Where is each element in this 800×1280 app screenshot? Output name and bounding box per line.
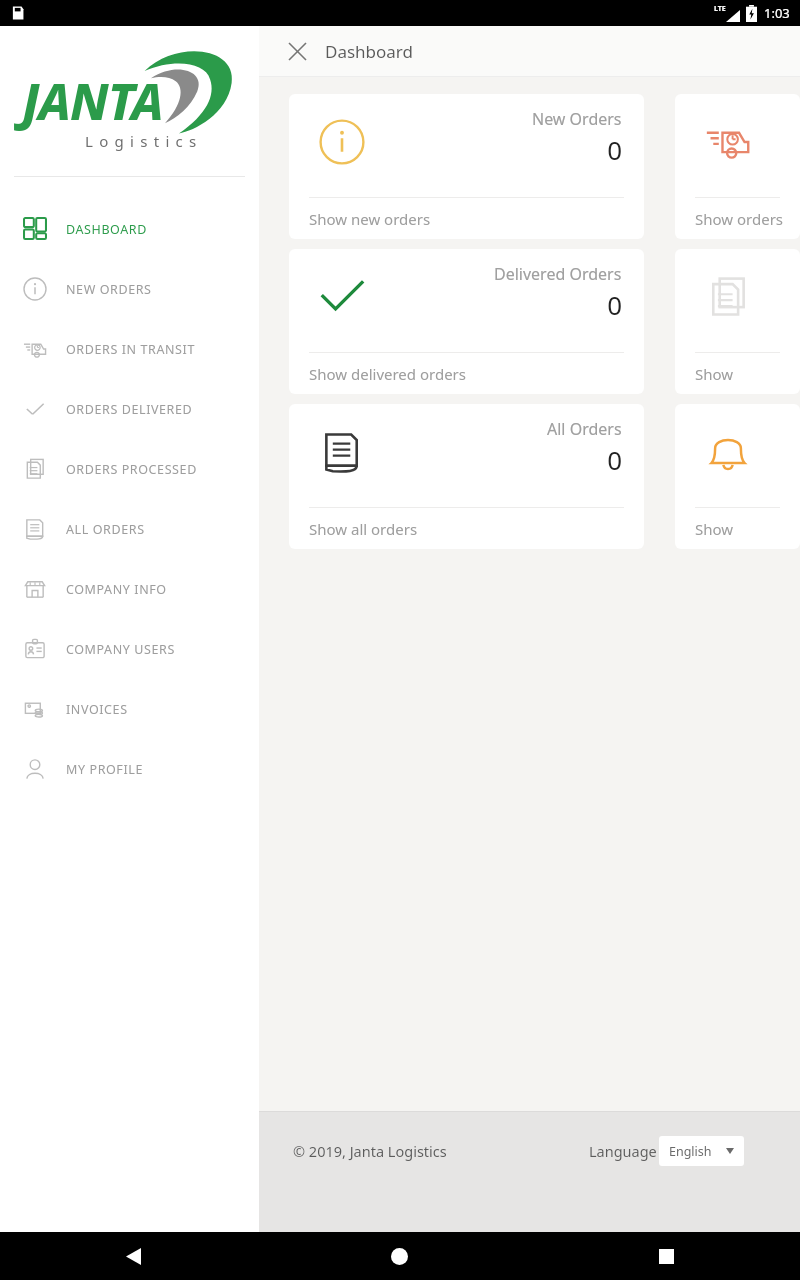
- button[interactable]: English: [659, 1136, 744, 1166]
- staticText: COMPANY INFO: [66, 581, 167, 598]
- button[interactable]: Close: [279, 33, 315, 69]
- button[interactable]: Recents: [533, 1232, 800, 1280]
- staticText: NEW ORDERS: [66, 281, 152, 298]
- button[interactable]: Show processed orders: [675, 249, 800, 394]
- button[interactable]: INVOICES: [0, 679, 259, 739]
- button[interactable]: ORDERS DELIVERED: [0, 379, 259, 439]
- staticText: 0: [607, 132, 622, 167]
- button[interactable]: ORDERS IN TRANSIT: [0, 319, 259, 379]
- button[interactable]: Delivered Orders: [289, 249, 644, 394]
- staticText: 0: [607, 287, 622, 322]
- staticText: COMPANY USERS: [66, 641, 175, 658]
- staticText: ORDERS DELIVERED: [66, 401, 193, 418]
- staticText: All Orders: [547, 418, 622, 440]
- staticText: © 2019, Janta Logistics: [293, 1141, 447, 1161]
- button[interactable]: Show orders in transit: [675, 94, 800, 239]
- button[interactable]: ORDERS PROCESSED: [0, 439, 259, 499]
- staticText: ALL ORDERS: [66, 521, 145, 538]
- staticText: Show processed orders: [695, 364, 800, 384]
- staticText: ORDERS PROCESSED: [66, 461, 197, 478]
- button[interactable]: All Orders: [289, 404, 644, 549]
- button[interactable]: DASHBOARD: [0, 199, 259, 259]
- button[interactable]: COMPANY INFO: [0, 559, 259, 619]
- button[interactable]: Back: [0, 1232, 266, 1280]
- staticText: Dashboard: [325, 40, 414, 63]
- button[interactable]: NEW ORDERS: [0, 259, 259, 319]
- button[interactable]: MY PROFILE: [0, 739, 259, 799]
- staticText: Show new orders: [309, 209, 431, 229]
- staticText: DASHBOARD: [66, 221, 147, 238]
- button[interactable]: Home: [266, 1232, 533, 1280]
- staticText: INVOICES: [66, 701, 128, 718]
- staticText: Show delivered orders: [309, 364, 466, 384]
- staticText: LTE: [714, 4, 726, 14]
- staticText: Show all orders: [309, 519, 418, 539]
- button[interactable]: Show notifications: [675, 404, 800, 549]
- staticText: MY PROFILE: [66, 761, 143, 778]
- staticText: Show orders in transit: [695, 209, 800, 229]
- button[interactable]: New Orders: [289, 94, 644, 239]
- button[interactable]: ALL ORDERS: [0, 499, 259, 559]
- staticText: Language: [589, 1141, 657, 1161]
- staticText: L o g i s t i c s: [85, 131, 198, 151]
- staticText: Show notifications: [695, 519, 800, 539]
- staticText: JANTA: [22, 67, 163, 135]
- staticText: ORDERS IN TRANSIT: [66, 341, 195, 358]
- button[interactable]: COMPANY USERS: [0, 619, 259, 679]
- staticText: 0: [607, 442, 622, 477]
- staticText: 1:03: [764, 4, 790, 22]
- staticText: New Orders: [532, 108, 622, 130]
- staticText: Delivered Orders: [494, 263, 622, 285]
- staticText: English: [669, 1143, 712, 1160]
